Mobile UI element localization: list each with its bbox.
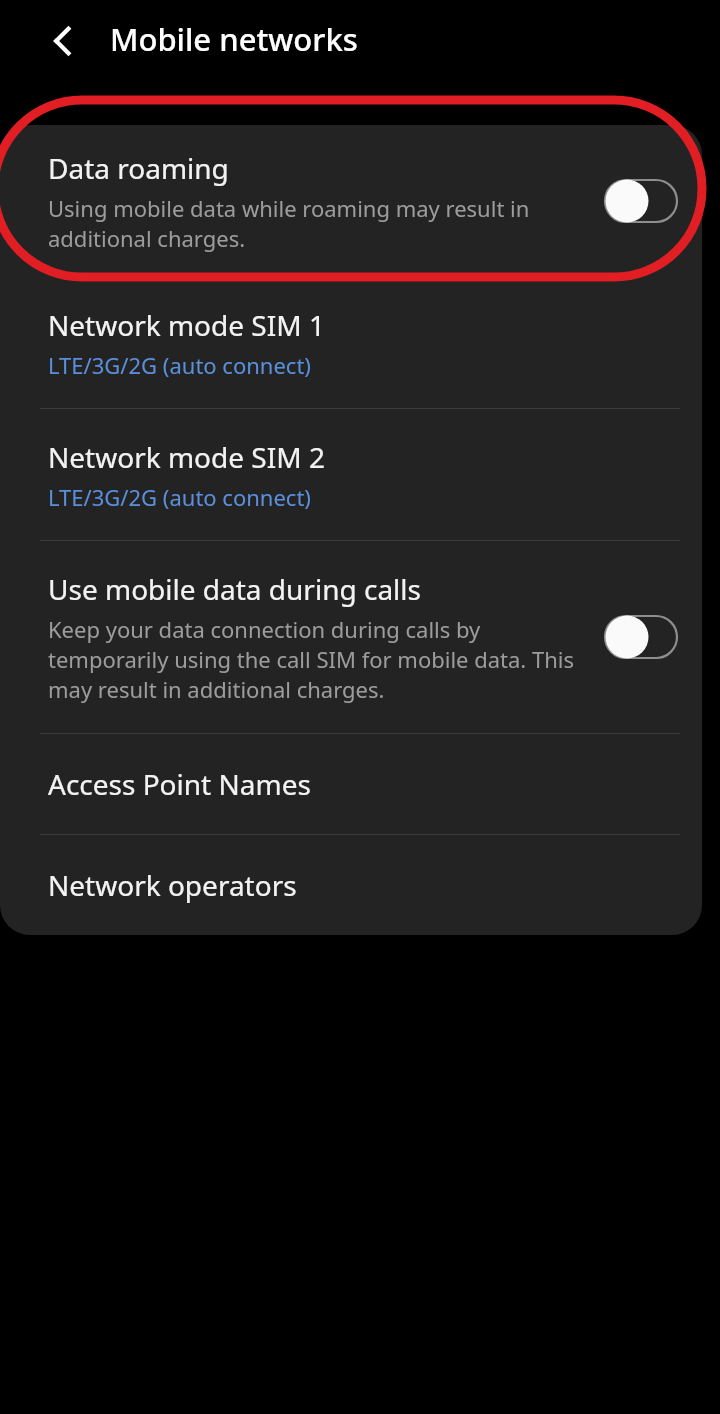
button[interactable]: Network operators (0, 835, 702, 935)
staticText: Data roaming (48, 149, 229, 187)
staticText: Using mobile data while roaming may resu… (48, 193, 582, 253)
button[interactable]: Toggle (602, 614, 680, 660)
button[interactable]: Toggle (602, 178, 680, 224)
button[interactable]: Back (30, 8, 96, 74)
button[interactable]: Data roaming (0, 125, 702, 277)
button[interactable]: Use mobile data during calls (0, 541, 702, 733)
staticText: Access Point Names (48, 765, 311, 803)
button[interactable]: Network mode SIM 1 (0, 277, 702, 408)
staticText: Keep your data connection during calls b… (48, 614, 582, 704)
staticText: Network mode SIM 2 (48, 438, 325, 476)
staticText: Network mode SIM 1 (48, 306, 325, 344)
staticText: Use mobile data during calls (48, 570, 421, 608)
staticText: LTE/3G/2G (auto connect) (48, 350, 311, 380)
staticText: Mobile networks (110, 18, 358, 60)
staticText: LTE/3G/2G (auto connect) (48, 482, 311, 512)
staticText: Network operators (48, 866, 297, 904)
button[interactable]: Network mode SIM 2 (0, 409, 702, 540)
button[interactable]: Access Point Names (0, 734, 702, 834)
